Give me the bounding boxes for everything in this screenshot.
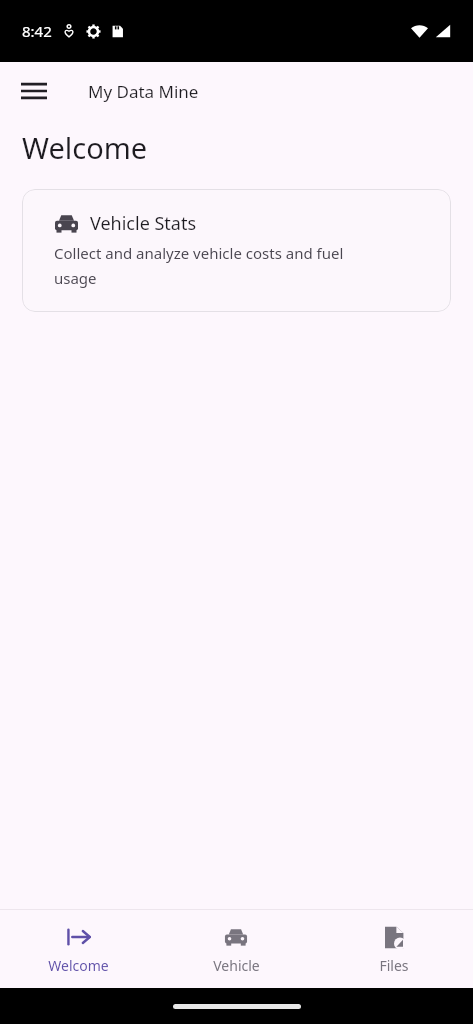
staticText: Vehicle Stats bbox=[90, 211, 197, 236]
button[interactable]: Files bbox=[315, 918, 473, 981]
staticText: Welcome bbox=[48, 956, 109, 975]
staticText: 8:42 bbox=[22, 21, 52, 41]
button[interactable]: Vehicle Stats bbox=[22, 189, 451, 312]
staticText: My Data Mine bbox=[88, 80, 199, 103]
staticText: Vehicle bbox=[213, 956, 260, 975]
staticText: Files bbox=[379, 956, 409, 975]
button[interactable]: Vehicle bbox=[157, 918, 315, 981]
staticText: Welcome bbox=[22, 128, 148, 167]
button[interactable]: Welcome bbox=[0, 918, 157, 981]
button[interactable]: Open navigation menu bbox=[10, 67, 58, 115]
staticText: Collect and analyze vehicle costs and fu… bbox=[54, 243, 384, 288]
